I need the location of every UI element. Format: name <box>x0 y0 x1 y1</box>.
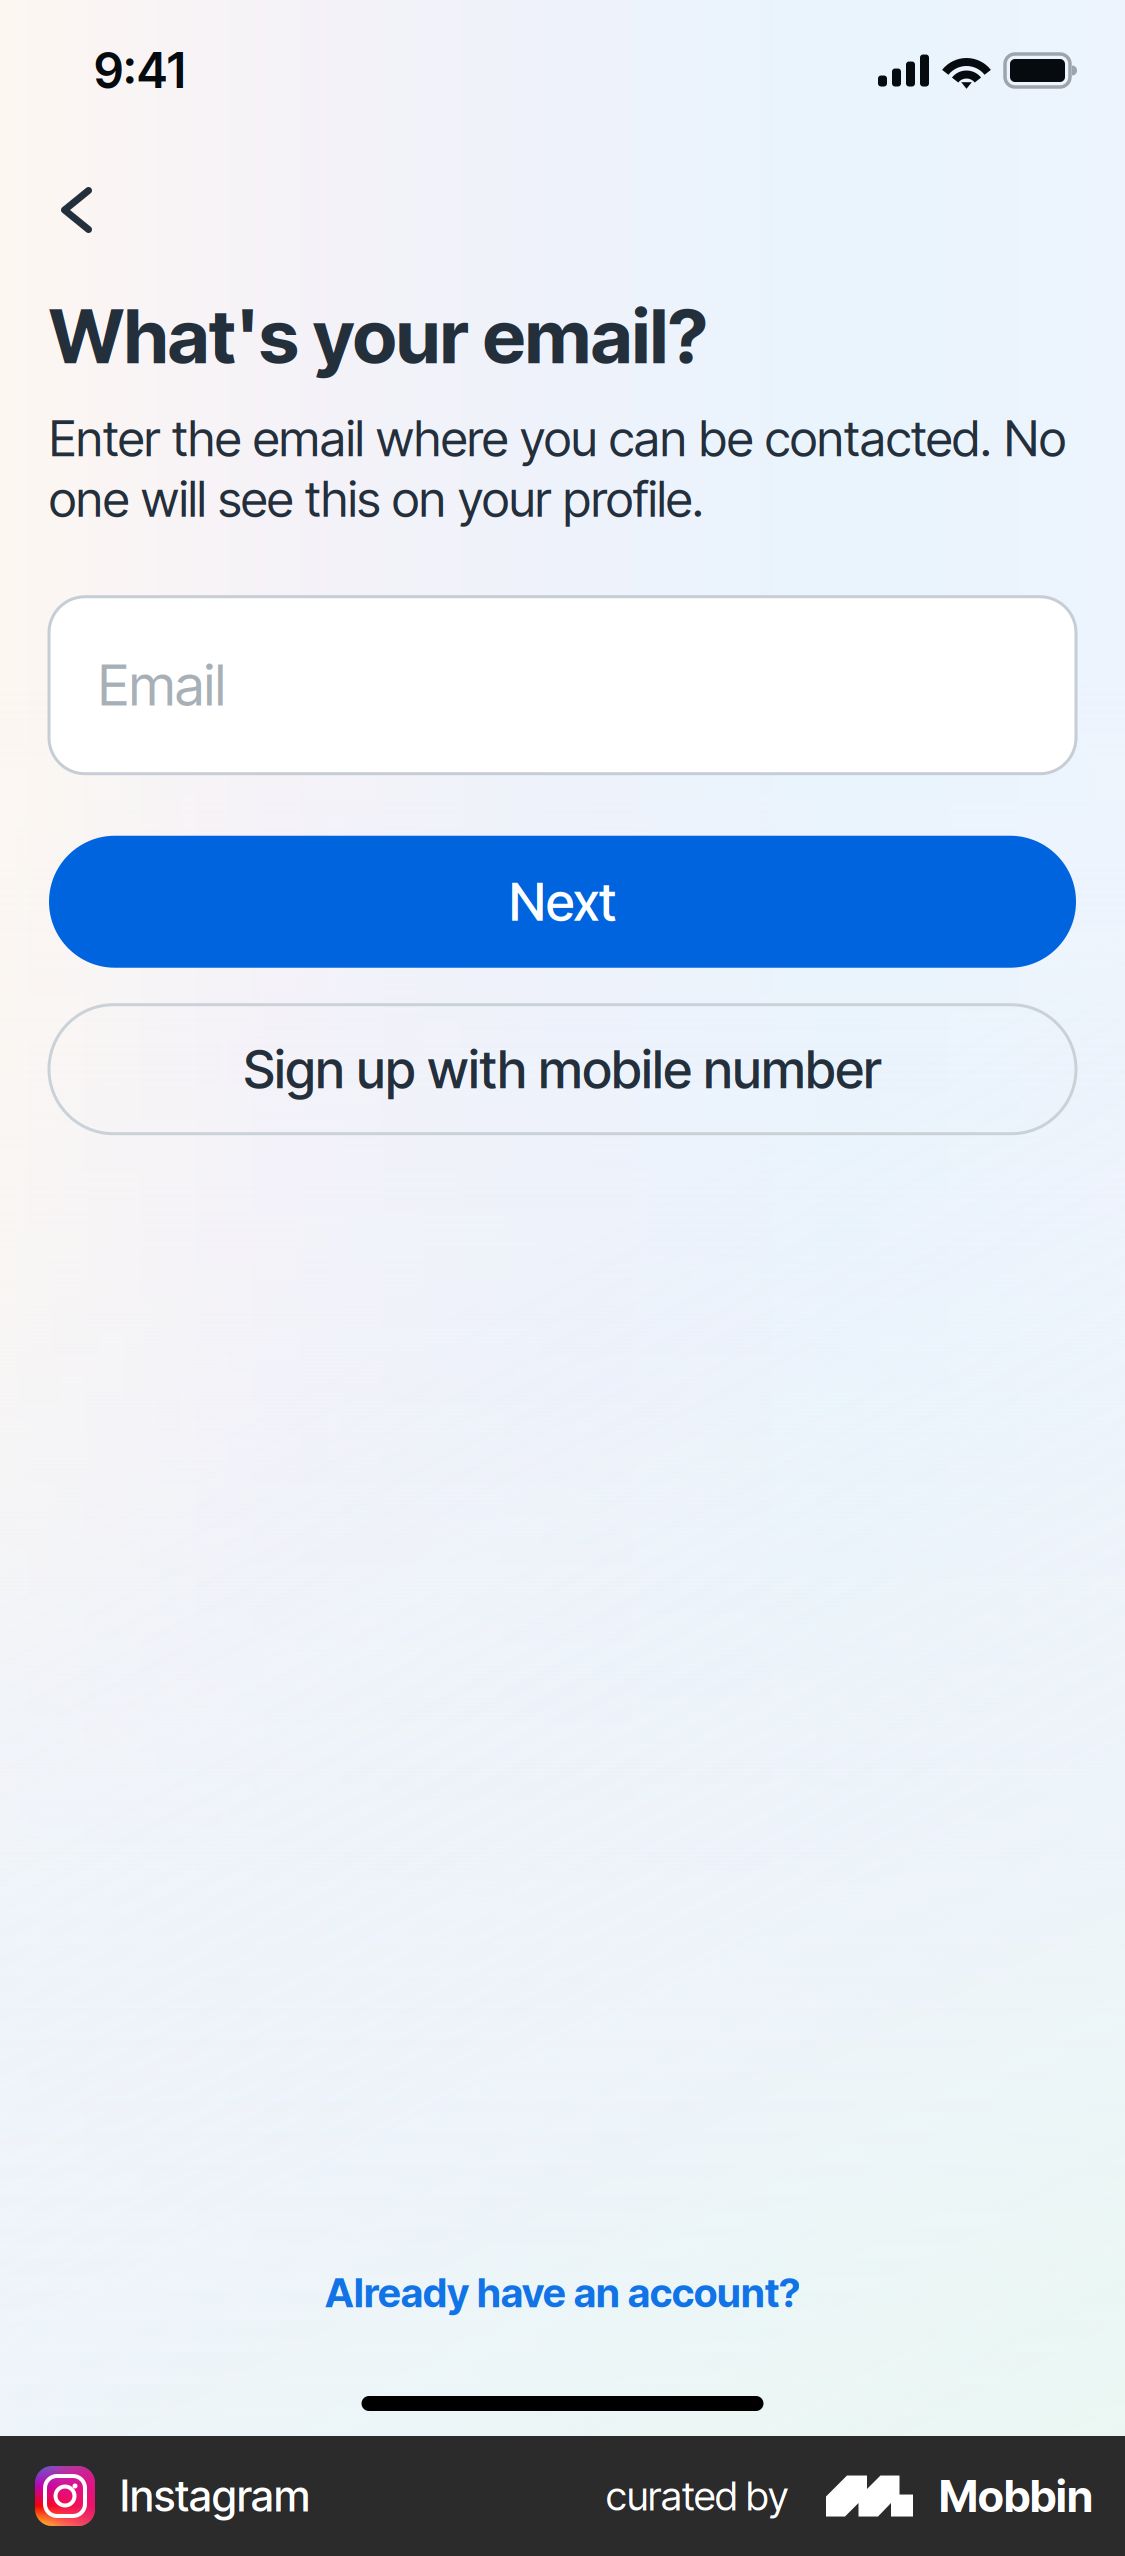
staticText: Mobbin <box>939 2469 1093 2523</box>
button[interactable]: Sign up with mobile number <box>0 968 1125 1134</box>
button[interactable]: Next <box>0 774 1125 968</box>
button[interactable]: Back <box>0 141 133 243</box>
staticText: Next <box>509 870 616 933</box>
staticText: What's your email? <box>49 291 708 381</box>
staticText: Enter the email where you can be contact… <box>49 408 1066 468</box>
staticText: Sign up with mobile number <box>243 1038 881 1101</box>
staticText: Already have an account? <box>325 2269 800 2317</box>
button[interactable]: Already have an account? <box>0 2232 1125 2336</box>
staticText: 9:41 <box>94 41 185 100</box>
staticText: curated by <box>606 2472 788 2520</box>
staticText: one will see this on your profile. <box>49 469 704 529</box>
staticText: Instagram <box>120 2470 310 2522</box>
staticText: Email <box>98 651 226 719</box>
